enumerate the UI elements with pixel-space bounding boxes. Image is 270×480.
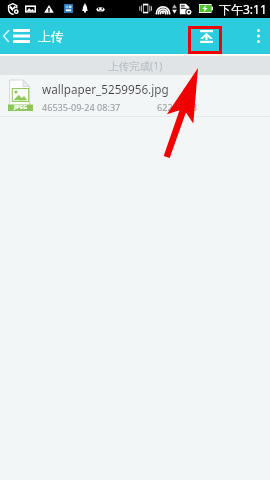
button[interactable]: Upload	[190, 22, 222, 50]
staticText: 上传完成(1)	[108, 59, 163, 73]
staticText: 46535-09-24 08:37	[42, 101, 121, 113]
button[interactable]: JPEG	[0, 75, 270, 117]
staticText: 上传	[38, 29, 64, 45]
staticText: JPEG	[14, 103, 28, 111]
button[interactable]: Menu	[0, 24, 34, 48]
staticText: 下午3:11	[219, 1, 267, 17]
button[interactable]: More options	[246, 21, 270, 51]
staticText: 622.69KB	[157, 101, 197, 113]
staticText: wallpaper_5259956.jpg	[42, 81, 169, 97]
